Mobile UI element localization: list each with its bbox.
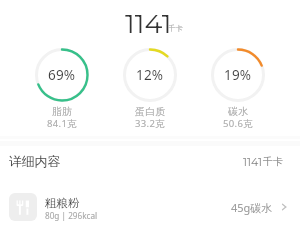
staticText: 19% [224, 66, 252, 84]
staticText: 50.6克 [198, 117, 278, 130]
staticText: 蛋白质 [110, 105, 190, 118]
staticText: 详细内容 [9, 154, 61, 170]
staticText: 1141 [125, 7, 172, 40]
staticText: 45g碳水 [231, 200, 273, 215]
staticText: 84.1克 [22, 117, 102, 130]
staticText: 千卡 [263, 155, 283, 168]
staticText: 1141 [243, 155, 262, 168]
button[interactable]: 粗粮粉 [0, 184, 300, 230]
staticText: 12% [136, 66, 164, 84]
staticText: 碳水 [198, 105, 278, 118]
staticText: 33.2克 [110, 117, 190, 130]
staticText: 粗粮粉 [45, 196, 80, 210]
staticText: 脂肪 [22, 105, 102, 118]
staticText: 千卡 [168, 24, 183, 33]
staticText: 69% [48, 66, 76, 84]
staticText: 80g | 296kcal [45, 210, 98, 221]
